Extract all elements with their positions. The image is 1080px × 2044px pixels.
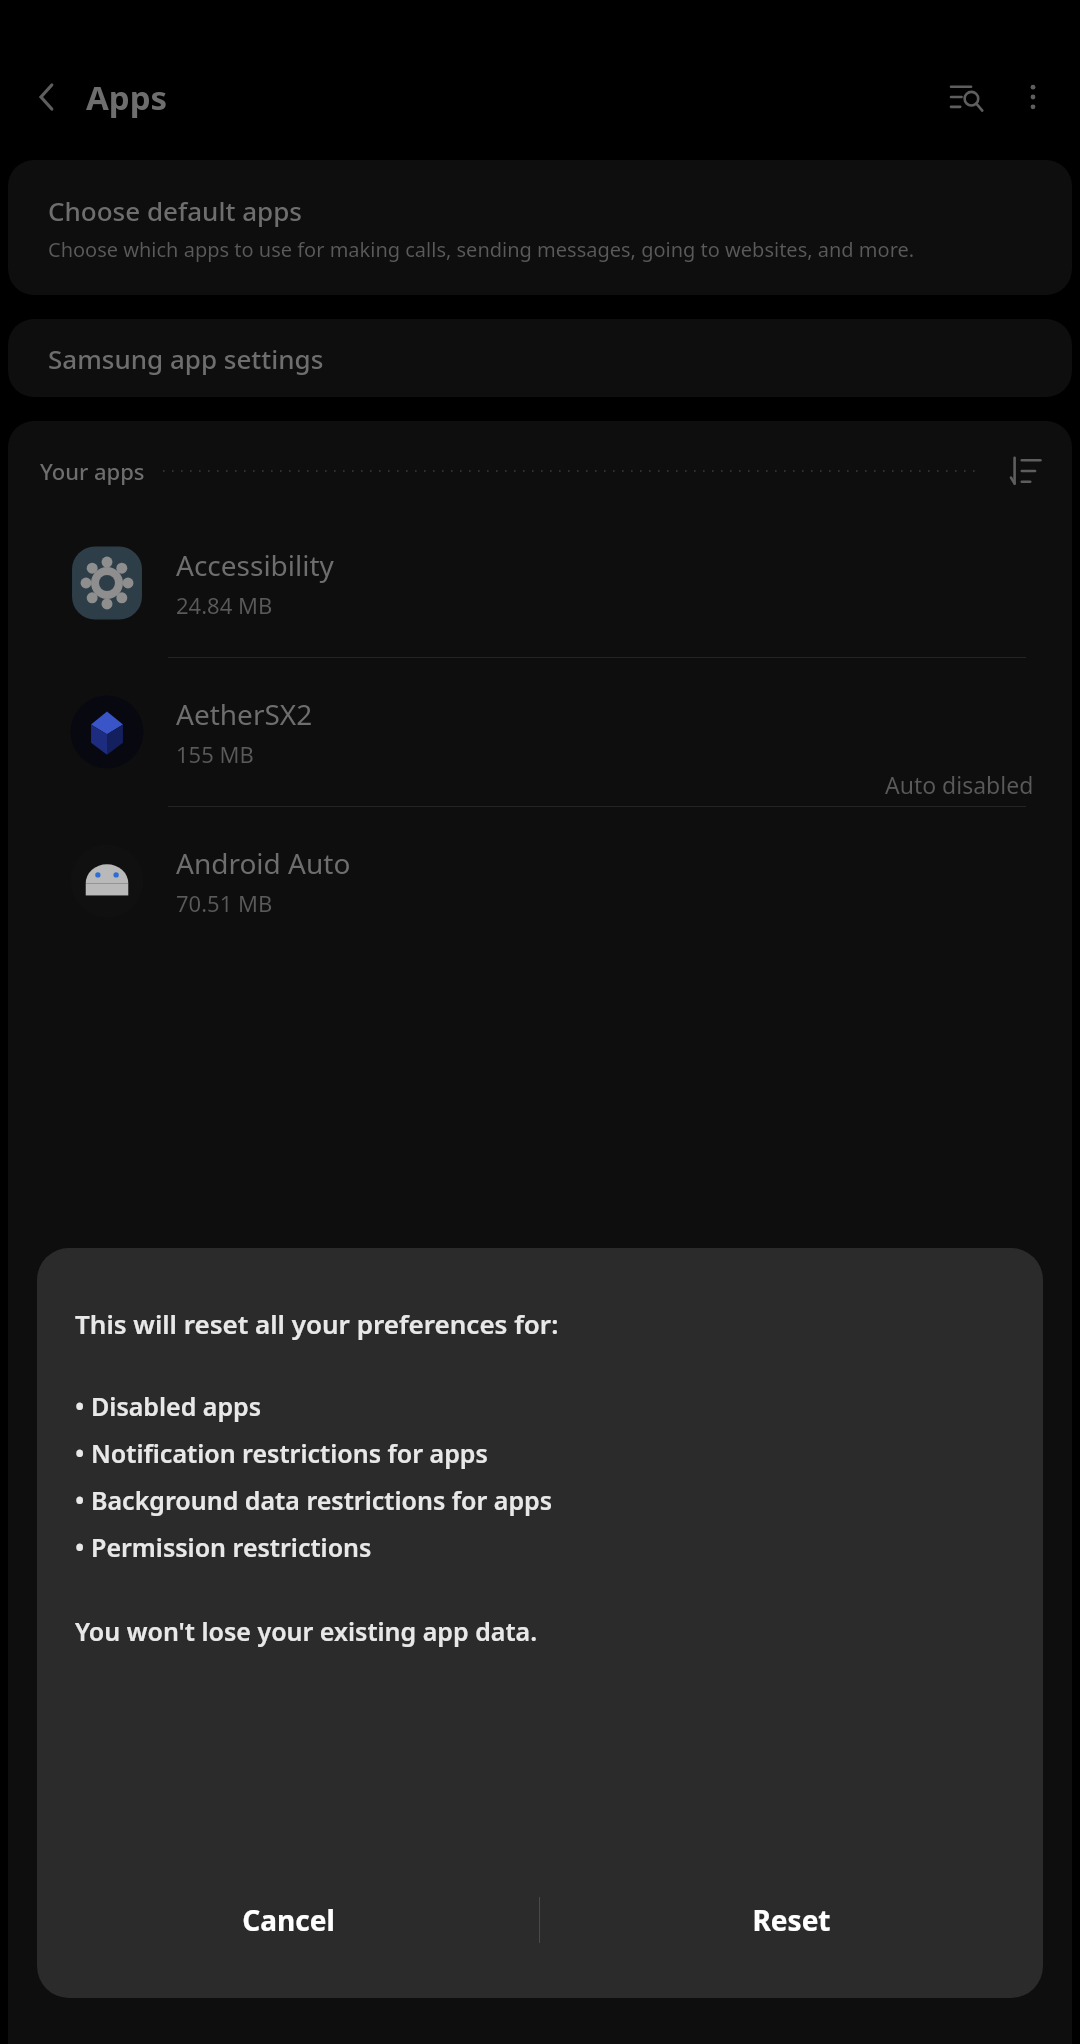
button[interactable]: Samsung app settings [8,319,1072,397]
staticText: Choose which apps to use for making call… [48,236,915,263]
staticText: Samsung app settings [48,341,324,376]
staticText: Your apps [40,456,145,486]
staticText: Auto disabled [885,769,1034,800]
staticText: This will reset all your preferences for… [75,1306,559,1341]
staticText: 24.84 MB [176,590,273,620]
staticText: You won't lose your existing app data. [75,1614,538,1648]
button[interactable]: Android Auto [8,807,1072,955]
staticText: Accessibility [176,546,334,584]
staticText: • [75,1483,91,1517]
staticText: Disabled apps [91,1389,262,1423]
staticText: Permission restrictions [91,1530,372,1564]
staticText: Reset [752,1901,831,1939]
button[interactable]: Reset [540,1860,1043,1980]
staticText: Android Auto [176,844,351,882]
staticText: AetherSX2 [176,695,313,733]
staticText: 155 MB [176,739,254,769]
staticText: Background data restrictions for apps [91,1483,553,1517]
staticText: • [75,1436,91,1470]
button[interactable]: Back [18,68,76,126]
staticText: • [75,1389,91,1423]
staticText: Apps [86,75,168,120]
staticText: • [75,1530,91,1564]
button[interactable]: More options [1002,66,1064,128]
staticText: Notification restrictions for apps [91,1436,488,1470]
button[interactable]: Choose default apps [8,160,1072,295]
button[interactable]: Sort [1000,445,1052,497]
staticText: Choose default apps [48,193,302,228]
button[interactable]: AetherSX2 [8,658,1072,806]
button[interactable]: Cancel [37,1860,539,1980]
staticText: Cancel [242,1901,335,1939]
staticText: 70.51 MB [176,888,273,918]
button[interactable]: Search apps [936,66,998,128]
button[interactable]: Accessibility [8,509,1072,657]
